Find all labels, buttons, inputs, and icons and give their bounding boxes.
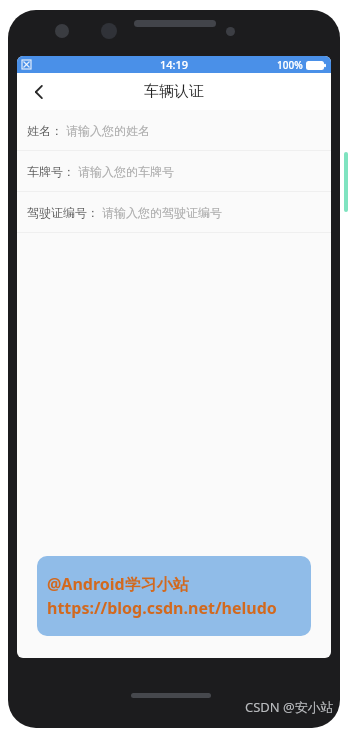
staticText: CSDN @安小站 bbox=[245, 698, 334, 716]
staticText: 100% bbox=[277, 58, 303, 72]
staticText: 请输入您的驾驶证编号 bbox=[102, 205, 222, 220]
staticText: 请输入您的车牌号 bbox=[78, 164, 174, 179]
staticText: https://blog.csdn.net/heludo bbox=[47, 597, 277, 619]
button[interactable]: 姓名： bbox=[17, 110, 331, 150]
staticText: 驾驶证编号： bbox=[27, 205, 99, 220]
staticText: @Android学习小站 bbox=[47, 573, 189, 595]
staticText: 14:19 bbox=[160, 57, 189, 72]
button[interactable]: @Android学习小站 bbox=[37, 556, 311, 636]
button[interactable]: 车牌号： bbox=[17, 151, 331, 191]
button[interactable]: Back bbox=[17, 73, 61, 110]
button[interactable]: 驾驶证编号： bbox=[17, 192, 331, 232]
staticText: 姓名： bbox=[27, 123, 63, 138]
staticText: 车辆认证 bbox=[144, 82, 204, 101]
staticText: 请输入您的姓名 bbox=[66, 123, 150, 138]
staticText: 车牌号： bbox=[27, 164, 75, 179]
